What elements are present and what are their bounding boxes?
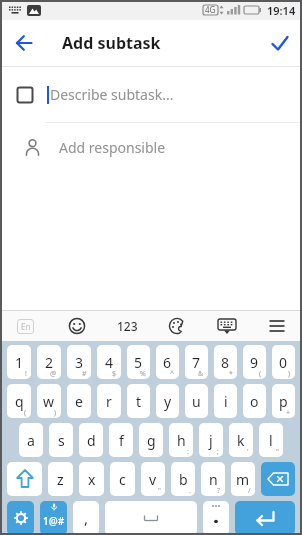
staticText: 6: [163, 353, 172, 372]
button[interactable]: [51, 311, 102, 341]
button[interactable]: x: [79, 462, 104, 496]
staticText: :: [187, 447, 189, 457]
button[interactable]: q: [7, 384, 31, 418]
staticText: *: [229, 369, 233, 379]
button[interactable]: t: [127, 384, 150, 418]
staticText: i: [224, 392, 228, 411]
staticText: m: [236, 470, 250, 489]
staticText: &: [198, 369, 204, 379]
button[interactable]: k: [229, 423, 253, 457]
staticText: Add subtask: [62, 32, 161, 54]
staticText: w: [43, 392, 55, 411]
button[interactable]: Describe subtask...: [0, 67, 302, 122]
button[interactable]: p: [272, 384, 295, 418]
button[interactable]: i: [214, 384, 237, 418]
button[interactable]: [105, 501, 197, 535]
staticText: 7: [192, 353, 201, 372]
button[interactable]: 1: [7, 345, 31, 379]
staticText: q: [15, 392, 24, 411]
staticText: 1: [15, 353, 24, 372]
button[interactable]: 3: [67, 345, 91, 379]
button[interactable]: 0: [272, 345, 295, 379]
staticText: $: [112, 369, 117, 379]
button[interactable]: 4: [97, 345, 121, 379]
button[interactable]: [261, 462, 295, 496]
staticText: s: [58, 431, 65, 450]
button[interactable]: d: [79, 423, 103, 457]
button[interactable]: j: [199, 423, 223, 457]
staticText: b: [179, 470, 188, 489]
staticText: f: [119, 431, 124, 450]
button[interactable]: c: [110, 462, 135, 496]
staticText: z: [57, 470, 64, 489]
button[interactable]: h: [169, 423, 193, 457]
staticText: ;: [217, 447, 219, 457]
button[interactable]: 123: [102, 311, 152, 341]
staticText: ': [247, 447, 249, 457]
button[interactable]: z: [48, 462, 73, 496]
button[interactable]: e: [67, 384, 91, 418]
button[interactable]: v: [141, 462, 165, 496]
button[interactable]: [235, 501, 295, 535]
button[interactable]: y: [156, 384, 179, 418]
staticText: x: [88, 470, 96, 489]
button[interactable]: o: [243, 384, 266, 418]
staticText: !: [25, 369, 27, 379]
staticText: t: [136, 392, 142, 411]
staticText: ): [288, 369, 291, 379]
button[interactable]: [7, 501, 34, 535]
button[interactable]: b: [171, 462, 195, 496]
staticText: 8: [221, 353, 230, 372]
staticText: ): [54, 408, 57, 418]
button[interactable]: [203, 501, 229, 535]
button[interactable]: En: [0, 311, 51, 341]
button[interactable]: m: [231, 462, 255, 496]
staticText: %: [140, 369, 146, 379]
staticText: o: [250, 392, 259, 411]
staticText: 4G: [205, 4, 216, 15]
staticText: p: [279, 392, 288, 411]
button[interactable]: 6: [156, 345, 179, 379]
staticText: 123: [117, 318, 138, 334]
button[interactable]: 1@#: [40, 501, 67, 535]
button[interactable]: [252, 311, 302, 341]
button[interactable]: ,: [73, 501, 99, 535]
staticText: Describe subtask...: [50, 85, 174, 104]
staticText: v: [149, 470, 157, 489]
button[interactable]: f: [109, 423, 133, 457]
button[interactable]: r: [97, 384, 121, 418]
staticText: ^: [170, 369, 175, 379]
staticText: ?: [217, 486, 221, 496]
button[interactable]: n: [201, 462, 225, 496]
button[interactable]: w: [37, 384, 61, 418]
staticText: ": [158, 486, 161, 496]
button[interactable]: l: [259, 423, 283, 457]
staticText: l: [269, 431, 273, 450]
button[interactable]: u: [185, 384, 208, 418]
button[interactable]: [266, 29, 294, 57]
button[interactable]: 2: [37, 345, 61, 379]
button[interactable]: s: [49, 423, 73, 457]
button[interactable]: a: [19, 423, 43, 457]
staticText: 4: [105, 353, 114, 372]
button[interactable]: 9: [243, 345, 266, 379]
button[interactable]: [202, 311, 252, 341]
staticText: ,: [84, 508, 89, 528]
button[interactable]: [7, 462, 42, 496]
button[interactable]: 5: [127, 345, 150, 379]
staticText: g: [147, 431, 156, 450]
staticText: 1@#: [43, 514, 65, 528]
button[interactable]: Add responsible: [0, 123, 302, 172]
staticText: En: [21, 321, 31, 332]
staticText: @: [50, 369, 57, 379]
button[interactable]: 7: [185, 345, 208, 379]
staticText: /: [248, 486, 251, 496]
button[interactable]: [152, 311, 202, 341]
staticText: e: [75, 392, 83, 411]
staticText: .: [189, 486, 191, 496]
button[interactable]: [10, 29, 38, 57]
button[interactable]: g: [139, 423, 163, 457]
staticText: j: [209, 431, 213, 450]
button[interactable]: 8: [214, 345, 237, 379]
staticText: #: [82, 369, 87, 379]
